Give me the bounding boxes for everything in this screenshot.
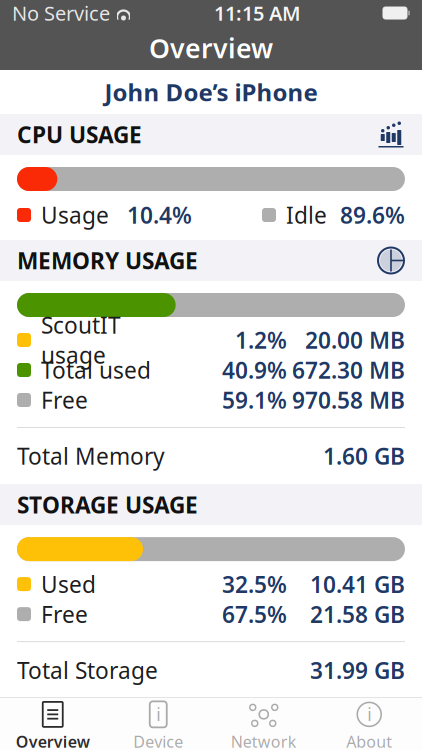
- staticText: John Doe’s iPhone: [104, 76, 317, 108]
- button[interactable]: Network: [211, 696, 316, 750]
- staticText: Free: [41, 385, 88, 415]
- staticText: i: [156, 703, 160, 726]
- staticText: 31.99 GB: [310, 655, 405, 685]
- staticText: No Service: [12, 0, 110, 26]
- staticText: About: [346, 731, 392, 750]
- button[interactable]: Overview: [0, 696, 105, 750]
- staticText: 672.30 MB: [292, 355, 405, 385]
- staticText: Idle: [286, 200, 327, 230]
- staticText: MEMORY USAGE: [17, 245, 198, 275]
- button[interactable]: i: [105, 696, 211, 750]
- staticText: i: [367, 703, 371, 726]
- staticText: 10.41 GB: [310, 569, 405, 599]
- staticText: Free: [41, 599, 88, 629]
- staticText: 1.60 GB: [323, 441, 405, 471]
- staticText: 1.2%: [235, 325, 287, 355]
- staticText: 32.5%: [222, 569, 287, 599]
- staticText: 89.6%: [340, 200, 405, 230]
- staticText: Overview: [16, 731, 90, 750]
- staticText: Usage: [41, 200, 109, 230]
- button[interactable]: i: [316, 696, 422, 750]
- staticText: Network: [231, 731, 297, 750]
- staticText: Total Storage: [17, 655, 158, 685]
- staticText: 67.5%: [222, 599, 287, 629]
- staticText: Overview: [149, 30, 273, 66]
- staticText: 59.1%: [222, 385, 287, 415]
- staticText: Total Memory: [17, 441, 165, 471]
- staticText: Device: [133, 731, 183, 750]
- staticText: 10.4%: [127, 200, 192, 230]
- staticText: Total used: [41, 355, 151, 385]
- staticText: CPU USAGE: [17, 119, 142, 149]
- staticText: 11:15 AM: [214, 0, 301, 26]
- staticText: 20.00 MB: [305, 325, 405, 355]
- staticText: STORAGE USAGE: [17, 490, 198, 520]
- staticText: 21.58 GB: [310, 599, 405, 629]
- staticText: 970.58 MB: [292, 385, 405, 415]
- staticText: Used: [41, 569, 96, 599]
- staticText: ScoutIT usage: [41, 310, 121, 370]
- staticText: 40.9%: [222, 355, 287, 385]
